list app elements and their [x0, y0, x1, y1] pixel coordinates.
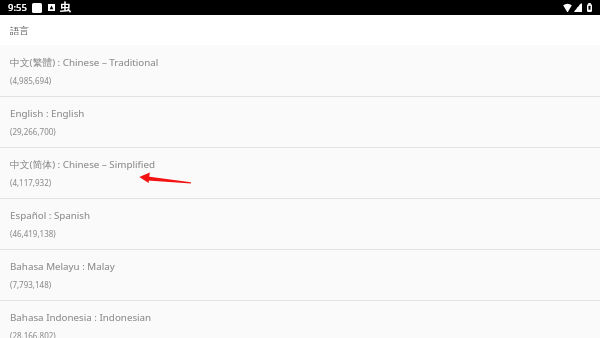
staticText: Bahasa Indonesia : Indonesian — [10, 311, 152, 324]
staticText: (29,266,700) — [10, 126, 56, 137]
staticText: (46,419,138) — [10, 228, 56, 239]
staticText: Español : Spanish — [10, 209, 91, 222]
staticText: Bahasa Melayu : Malay — [10, 260, 115, 273]
button[interactable]: Español : Spanish — [0, 198, 600, 249]
staticText: 中文(简体) : Chinese – Simplified — [10, 158, 155, 171]
staticText: 虫 — [60, 1, 71, 14]
staticText: English : English — [10, 107, 85, 120]
staticText: (4,117,932) — [10, 177, 52, 188]
staticText: (4,985,694) — [10, 75, 52, 86]
staticText: (28,166,802) — [10, 330, 56, 338]
button[interactable]: Bahasa Indonesia : Indonesian — [0, 300, 600, 338]
button[interactable]: Bahasa Melayu : Malay — [0, 249, 600, 300]
staticText: (7,793,148) — [10, 279, 52, 290]
button[interactable]: 中文(简体) : Chinese – Simplified — [0, 147, 600, 198]
staticText: 9:55 — [8, 1, 27, 14]
button[interactable]: English : English — [0, 96, 600, 147]
button[interactable]: 中文(繁體) : Chinese – Traditional — [0, 45, 600, 96]
staticText: 中文(繁體) : Chinese – Traditional — [10, 56, 159, 69]
staticText: 語言 — [10, 25, 29, 37]
